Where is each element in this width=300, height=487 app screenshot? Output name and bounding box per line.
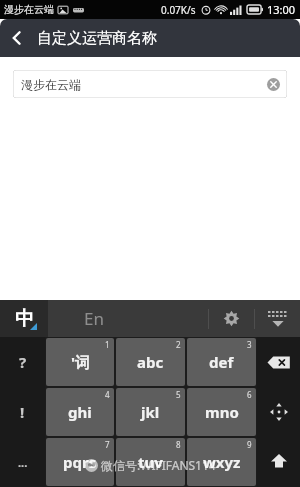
button[interactable]: Clear text — [265, 76, 281, 92]
button[interactable]: ... — [0, 437, 45, 487]
staticText: 0.07K/s — [161, 3, 196, 17]
staticText: jkl — [141, 402, 160, 422]
button[interactable]: def — [187, 338, 256, 386]
staticText: 1 — [105, 339, 110, 350]
staticText: ghi — [68, 402, 92, 422]
button[interactable]: ? — [0, 337, 45, 387]
staticText: 13:00 — [267, 2, 296, 17]
button[interactable]: Hide keyboard — [255, 300, 300, 337]
button[interactable]: En — [48, 300, 208, 337]
button[interactable]: Symbols — [257, 437, 300, 487]
staticText: 漫步在云端 — [4, 3, 54, 16]
staticText: 5 — [176, 389, 181, 400]
staticText: 中 — [15, 307, 34, 331]
button[interactable]: Back — [0, 21, 34, 55]
button[interactable]: jkl — [116, 388, 185, 436]
staticText: ! — [20, 402, 25, 422]
staticText: abc — [137, 352, 164, 372]
button[interactable]: pqrs — [46, 438, 114, 486]
staticText: 自定义运营商名称 — [37, 29, 157, 48]
staticText: 9 — [247, 439, 252, 450]
button[interactable]: wxyz — [187, 438, 256, 486]
button[interactable]: Settings — [209, 300, 254, 337]
button[interactable]: abc — [116, 338, 185, 386]
button[interactable]: 中 — [0, 300, 48, 337]
button[interactable]: tuv — [116, 438, 185, 486]
staticText: ... — [18, 455, 28, 470]
staticText: 漫步在云端 — [21, 77, 81, 92]
staticText: 4 — [105, 389, 110, 400]
staticText: En — [84, 307, 104, 330]
staticText: 6 — [247, 389, 252, 400]
staticText: pqrs — [63, 452, 97, 472]
button[interactable]: mno — [187, 388, 256, 436]
button[interactable]: ! — [0, 387, 45, 437]
staticText: '词 — [71, 352, 90, 372]
button[interactable]: Backspace — [257, 337, 300, 387]
staticText: wxyz — [203, 452, 241, 472]
button[interactable]: 漫步在云端 — [13, 70, 287, 98]
staticText: 7 — [105, 439, 110, 450]
staticText: 8 — [176, 439, 181, 450]
staticText: ? — [19, 352, 27, 372]
staticText: mno — [205, 402, 239, 422]
button[interactable]: Arrow keys — [257, 387, 300, 437]
staticText: 2 — [176, 339, 181, 350]
staticText: def — [209, 352, 234, 372]
button[interactable]: ghi — [46, 388, 114, 436]
staticText: 微信号:WIFIFANS114 — [101, 457, 216, 473]
button[interactable]: '词 — [46, 338, 114, 386]
staticText: 3 — [247, 339, 252, 350]
staticText: tuv — [138, 452, 163, 472]
